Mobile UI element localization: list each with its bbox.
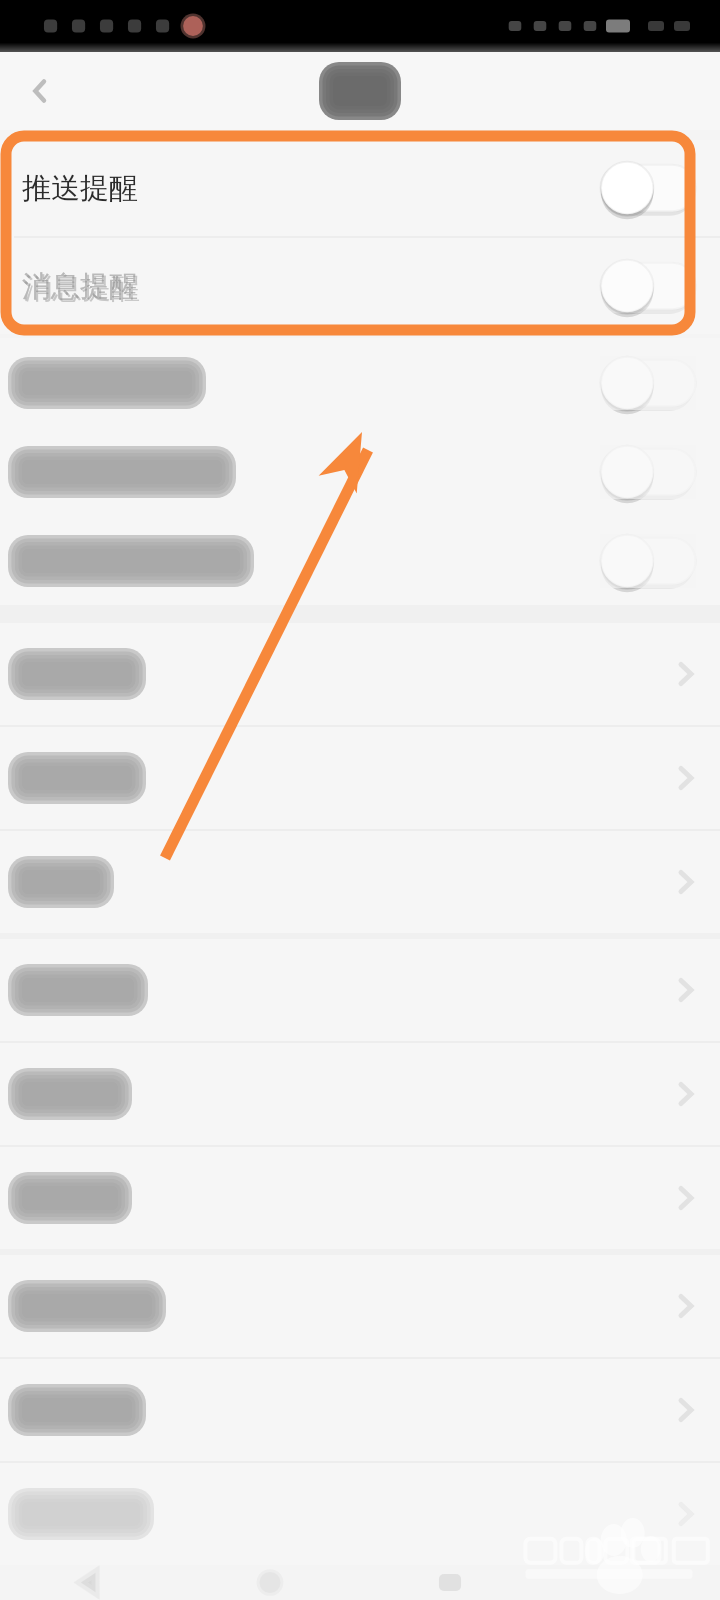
button[interactable]: Recents (360, 1565, 540, 1600)
button[interactable] (0, 1043, 720, 1145)
button[interactable] (0, 727, 720, 829)
button[interactable]: 消息提醒 (0, 238, 720, 334)
button[interactable]: Back (0, 1565, 180, 1600)
button[interactable]: Back (18, 69, 62, 113)
staticText: 推送提醒 (22, 170, 138, 207)
staticText: 消息提醒 (22, 268, 138, 305)
staticText: 消息提醒 (24, 270, 140, 307)
button[interactable] (0, 427, 720, 516)
button[interactable] (0, 831, 720, 933)
button[interactable] (0, 1359, 720, 1461)
button[interactable] (0, 338, 720, 427)
button[interactable] (0, 1463, 720, 1565)
button[interactable]: Home (180, 1565, 360, 1600)
button[interactable] (0, 1147, 720, 1249)
button[interactable]: 推送提醒 (0, 140, 720, 236)
button[interactable] (0, 1255, 720, 1357)
button[interactable] (0, 516, 720, 605)
button[interactable] (0, 939, 720, 1041)
button[interactable] (0, 623, 720, 725)
